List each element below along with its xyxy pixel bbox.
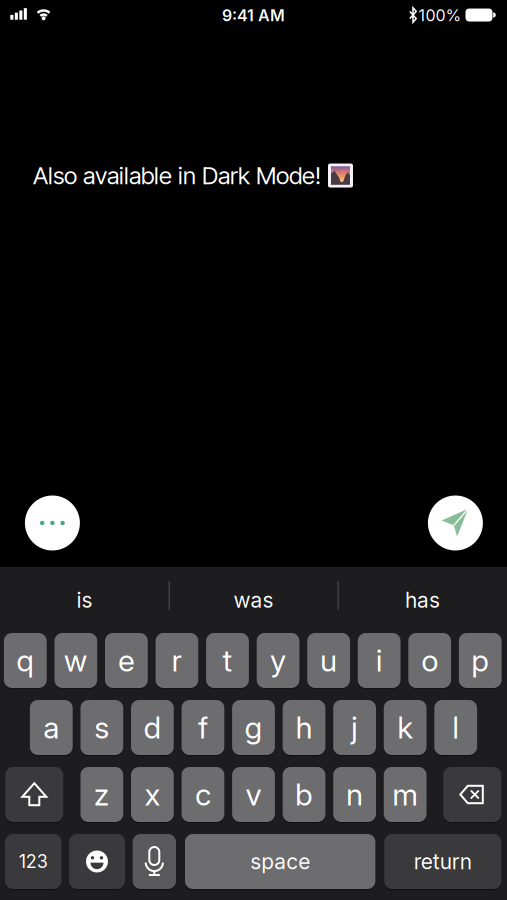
button[interactable]: space (185, 834, 375, 889)
staticText: q (16, 642, 34, 679)
button[interactable]: w (54, 633, 97, 688)
staticText: c (195, 776, 211, 813)
button[interactable]: z (80, 767, 123, 822)
button[interactable]: t (206, 633, 249, 688)
button[interactable]: v (232, 767, 275, 822)
button[interactable]: Shift (5, 767, 63, 822)
staticText: h (296, 709, 313, 746)
staticText: Also available in Dark Mode! (33, 161, 321, 190)
button[interactable]: Dictate (133, 834, 176, 889)
button[interactable]: q (4, 633, 47, 688)
staticText: e (118, 642, 135, 679)
staticText: f (198, 709, 208, 746)
staticText: i (376, 642, 383, 679)
button[interactable]: k (384, 700, 427, 755)
button[interactable]: a (30, 700, 73, 755)
staticText: d (143, 709, 161, 746)
staticText: b (295, 776, 313, 813)
button[interactable]: p (459, 633, 502, 688)
button[interactable]: Delete (443, 767, 501, 822)
button[interactable]: x (131, 767, 174, 822)
button[interactable]: Send (428, 495, 483, 550)
button[interactable]: 123 (5, 834, 61, 889)
staticText: r (171, 642, 182, 679)
button[interactable]: e (105, 633, 148, 688)
button[interactable]: return (384, 834, 501, 889)
staticText: p (471, 642, 489, 679)
button[interactable]: g (232, 700, 275, 755)
staticText: is (76, 587, 92, 613)
button[interactable]: r (155, 633, 198, 688)
staticText: g (244, 709, 262, 746)
staticText: w (64, 642, 88, 679)
button[interactable]: m (384, 767, 427, 822)
button[interactable]: d (131, 700, 174, 755)
staticText: 123 (19, 851, 48, 872)
staticText: u (320, 642, 337, 679)
button[interactable]: u (307, 633, 350, 688)
staticText: l (452, 709, 459, 746)
button[interactable]: c (181, 767, 224, 822)
button[interactable]: l (434, 700, 477, 755)
button[interactable]: is (0, 572, 168, 628)
button[interactable]: i (358, 633, 401, 688)
button[interactable]: b (283, 767, 325, 822)
button[interactable]: Emoji (69, 834, 125, 889)
staticText: z (94, 776, 110, 813)
staticText: k (397, 709, 413, 746)
button[interactable]: More options (25, 495, 80, 550)
button[interactable]: f (181, 700, 224, 755)
staticText: 100% (418, 6, 461, 25)
staticText: 9:41 AM (222, 6, 285, 25)
staticText: m (392, 776, 418, 813)
staticText: return (414, 849, 472, 874)
staticText: x (144, 776, 160, 813)
staticText: o (421, 642, 438, 679)
staticText: t (222, 642, 232, 679)
button[interactable]: was (169, 572, 337, 628)
button[interactable]: o (408, 633, 451, 688)
button[interactable]: has (338, 572, 506, 628)
staticText: y (270, 642, 286, 679)
staticText: has (405, 587, 440, 613)
button[interactable]: j (333, 700, 376, 755)
staticText: s (94, 709, 109, 746)
button[interactable]: n (333, 767, 376, 822)
button[interactable]: y (257, 633, 299, 688)
staticText: a (43, 709, 59, 746)
button[interactable]: h (283, 700, 325, 755)
staticText: j (351, 709, 358, 746)
staticText: v (245, 776, 261, 813)
button[interactable]: s (80, 700, 123, 755)
staticText: was (233, 587, 273, 613)
staticText: n (346, 776, 363, 813)
staticText: space (250, 849, 310, 874)
